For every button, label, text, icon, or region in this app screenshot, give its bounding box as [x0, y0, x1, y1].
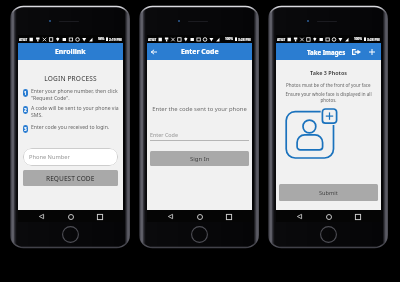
- staticText: Sign In: [190, 155, 210, 163]
- staticText: Enter your phone number, then click "Req…: [31, 88, 118, 101]
- staticText: Enrollink: [55, 47, 86, 56]
- staticText: Enter Code: [150, 131, 178, 138]
- button[interactable]: Back: [294, 211, 305, 222]
- staticText: A code will be sent to your phone via SM…: [31, 105, 119, 118]
- button[interactable]: Recent apps: [94, 211, 105, 222]
- staticText: Take 3 Photos: [310, 69, 347, 76]
- staticText: AT&T: [148, 37, 157, 41]
- button[interactable]: Back: [147, 45, 161, 59]
- button[interactable]: Back: [165, 211, 176, 222]
- button[interactable]: Phone Number: [23, 148, 118, 166]
- staticText: 2: [24, 107, 27, 113]
- button[interactable]: Log out: [349, 44, 364, 60]
- staticText: Enter the code sent to your phone: [147, 105, 252, 113]
- staticText: Phone Number: [29, 153, 70, 161]
- staticText: 3:28 PM: [238, 37, 251, 41]
- button[interactable]: Home: [323, 211, 334, 222]
- staticText: Submit: [319, 189, 338, 197]
- staticText: Ensure your whole face is displayed in a…: [285, 91, 372, 104]
- button[interactable]: REQUEST CODE: [23, 170, 118, 186]
- staticText: 94%: [98, 37, 105, 41]
- button[interactable]: Sign In: [150, 151, 249, 166]
- button[interactable]: Submit: [279, 184, 378, 201]
- staticText: Enter code you received to login.: [31, 124, 110, 131]
- button[interactable]: Back: [36, 211, 47, 222]
- button[interactable]: Recent apps: [352, 211, 363, 222]
- staticText: 3:28 PM: [367, 37, 380, 41]
- staticText: LOGIN PROCESS: [18, 74, 123, 83]
- button[interactable]: Add photo: [364, 44, 379, 60]
- staticText: 3: [24, 126, 27, 132]
- staticText: AT&T: [277, 37, 286, 41]
- button[interactable]: Home: [194, 211, 205, 222]
- staticText: 2:19 PM: [109, 37, 122, 41]
- staticText: Photos must be of the front of your face: [286, 82, 371, 88]
- staticText: 100%: [225, 37, 234, 41]
- button[interactable]: Home: [65, 211, 76, 222]
- staticText: REQUEST CODE: [46, 174, 95, 183]
- staticText: Take Images: [307, 48, 346, 56]
- staticText: 1: [24, 90, 27, 96]
- button[interactable]: Recent apps: [223, 211, 234, 222]
- staticText: AT&T: [19, 37, 28, 41]
- button[interactable]: Enter Code: [150, 131, 249, 141]
- staticText: Enter Code: [181, 47, 219, 56]
- staticText: 100%: [354, 37, 363, 41]
